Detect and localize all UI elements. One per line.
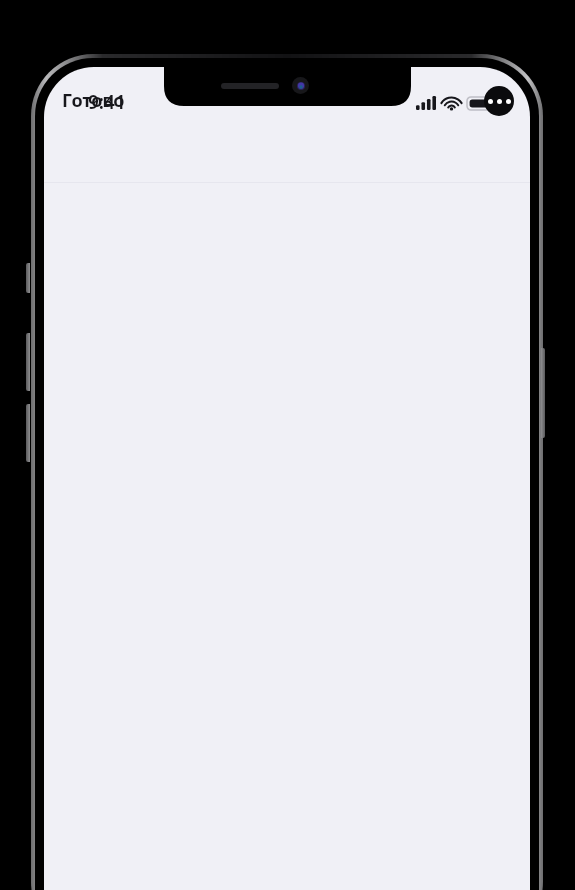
button[interactable]: Готово	[54, 82, 133, 119]
staticText: 9:41	[88, 89, 126, 115]
staticText: Готово	[62, 88, 125, 113]
button[interactable]: More options	[484, 86, 514, 116]
